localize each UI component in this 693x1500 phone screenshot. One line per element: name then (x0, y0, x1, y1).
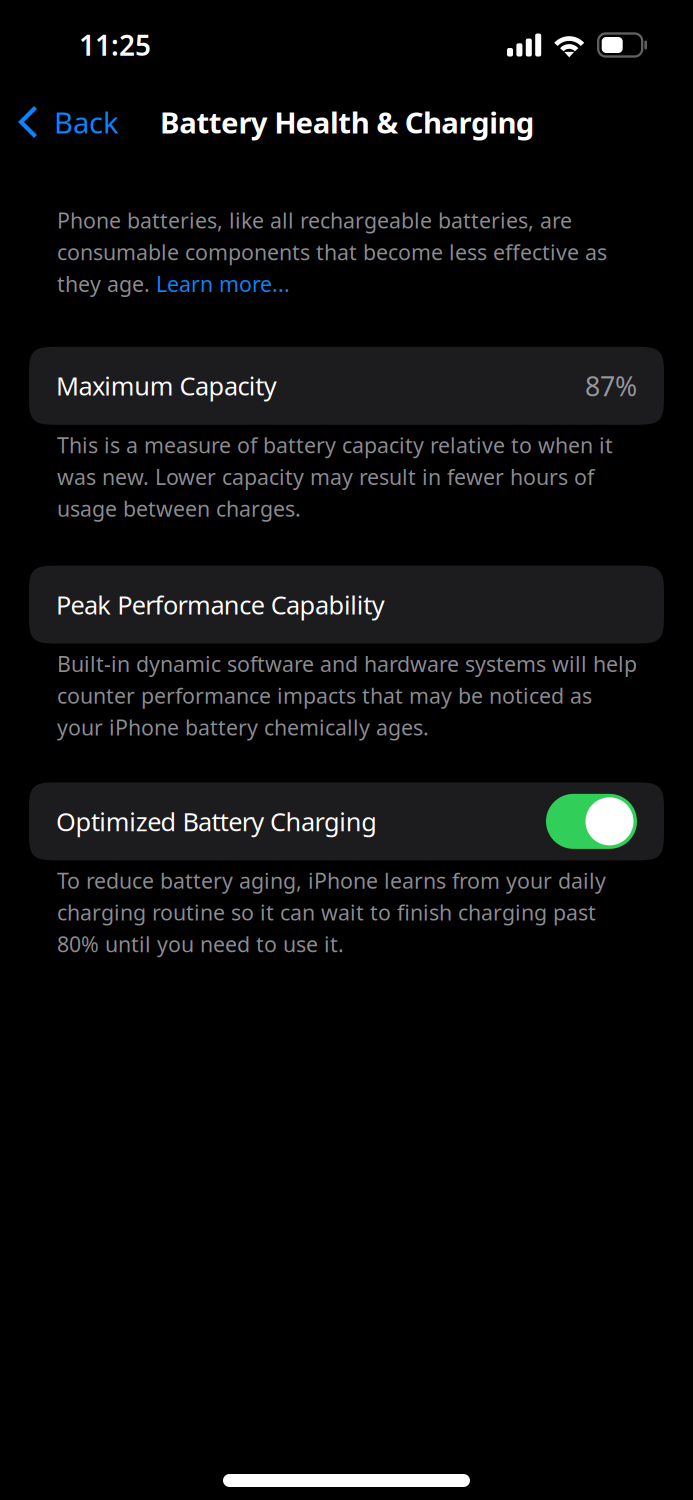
staticText: 87% (585, 368, 637, 403)
staticText: counter performance impacts that may be … (57, 681, 592, 710)
staticText: consumable components that become less e… (57, 238, 607, 266)
staticText: charging routine so it can wait to finis… (57, 898, 596, 926)
staticText: To reduce battery aging, iPhone learns f… (57, 866, 606, 895)
staticText: This is a measure of battery capacity re… (57, 431, 613, 459)
staticText: Optimized Battery Charging (56, 804, 377, 838)
button[interactable]: Learn more... (156, 269, 290, 298)
staticText: Back (54, 102, 119, 141)
staticText: Battery Health & Charging (160, 102, 535, 141)
staticText: was new. Lower capacity may result in fe… (57, 462, 594, 491)
button[interactable]: Peak Performance Capability (29, 566, 664, 644)
staticText: usage between charges. (57, 494, 301, 523)
staticText: Peak Performance Capability (56, 588, 385, 621)
staticText: 11:25 (79, 26, 151, 64)
button[interactable]: Optimized Battery Charging (546, 794, 637, 849)
staticText: Phone batteries, like all rechargeable b… (57, 206, 572, 234)
staticText: Learn more... (156, 269, 290, 298)
staticText: your iPhone battery chemically ages. (57, 713, 429, 741)
staticText: Maximum Capacity (56, 369, 277, 403)
staticText: Built-in dynamic software and hardware s… (57, 650, 637, 678)
button[interactable]: Back (0, 90, 133, 154)
staticText: 80% until you need to use it. (57, 930, 344, 958)
staticText: they age. (57, 269, 156, 298)
